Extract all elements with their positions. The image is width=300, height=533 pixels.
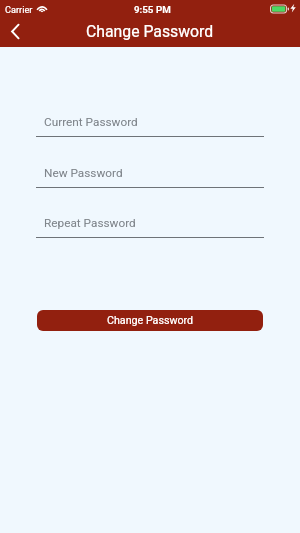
staticText: New Password [44, 166, 123, 180]
button[interactable]: Back [1, 17, 29, 45]
staticText: 9:55 PM [134, 4, 171, 15]
button[interactable]: Current Password [36, 110, 264, 137]
button[interactable]: New Password [36, 161, 264, 188]
staticText: Repeat Password [44, 216, 136, 230]
staticText: Change Password [86, 22, 214, 41]
button[interactable]: Repeat Password [36, 211, 264, 238]
staticText: Current Password [44, 115, 138, 129]
staticText: Carrier [5, 4, 33, 15]
button[interactable]: Change Password [37, 310, 263, 331]
staticText: Change Password [107, 314, 194, 327]
